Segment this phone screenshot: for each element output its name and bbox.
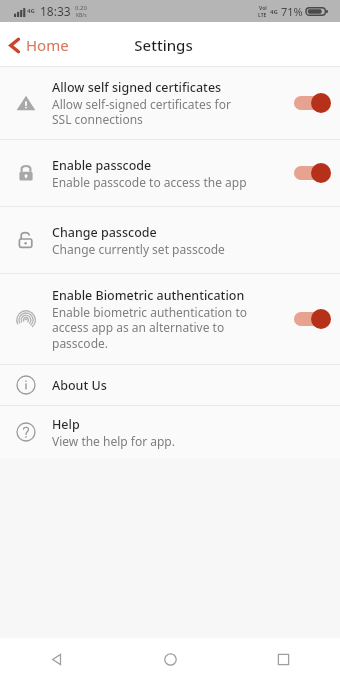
staticText: 0.20 xyxy=(75,4,87,12)
button[interactable]: Back xyxy=(0,638,114,680)
button[interactable]: Home xyxy=(0,29,79,61)
button[interactable]: Enable Biometric authentication xyxy=(0,274,340,364)
button[interactable]: Help xyxy=(0,406,340,458)
button[interactable]: Allow self signed certificates xyxy=(0,67,340,139)
staticText: Allow self signed certificates xyxy=(52,79,222,96)
button[interactable]: Recent apps xyxy=(227,638,340,680)
staticText: Enable biometric authentication to acces… xyxy=(52,304,247,352)
staticText: Enable passcode to access the app xyxy=(52,174,247,190)
staticText: 18:33 xyxy=(40,3,71,19)
staticText: 71% xyxy=(281,4,303,19)
button[interactable]: Change passcode xyxy=(0,207,340,273)
staticText: 4G xyxy=(270,8,278,16)
staticText: Change passcode xyxy=(52,224,157,241)
button[interactable]: Toggle setting xyxy=(292,92,334,114)
staticText: About Us xyxy=(52,377,107,394)
staticText: Vol xyxy=(259,5,267,12)
staticText: KB/s xyxy=(76,12,87,19)
staticText: LTE xyxy=(258,12,267,19)
staticText: Enable passcode xyxy=(52,157,152,174)
staticText: Help xyxy=(52,416,80,433)
button[interactable]: Toggle setting xyxy=(292,162,334,184)
button[interactable]: Enable passcode xyxy=(0,140,340,206)
button[interactable]: About Us xyxy=(0,365,340,405)
staticText: Home xyxy=(26,35,69,55)
staticText: Enable Biometric authentication xyxy=(52,287,245,304)
staticText: Settings xyxy=(134,35,193,55)
staticText: 4G xyxy=(27,7,35,15)
button[interactable]: Home xyxy=(114,638,227,680)
staticText: Change currently set passcode xyxy=(52,241,225,257)
staticText: View the help for app. xyxy=(52,433,175,449)
button[interactable]: Toggle setting xyxy=(292,308,334,330)
staticText: Allow self-signed certificates for SSL c… xyxy=(52,96,231,128)
